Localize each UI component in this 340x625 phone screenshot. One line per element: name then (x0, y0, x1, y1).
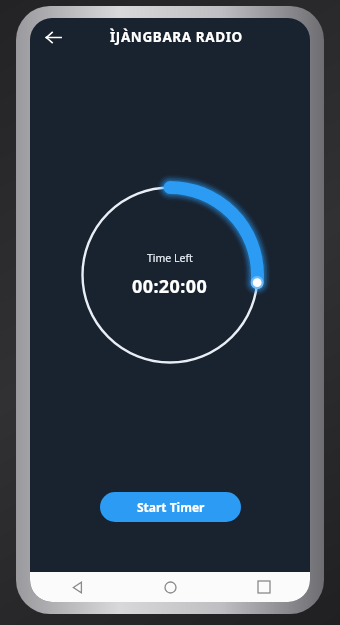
staticText: ÌJÀNGBARA RADIO (110, 28, 243, 46)
button[interactable]: Recents (217, 572, 310, 602)
button[interactable]: Back (30, 572, 124, 602)
button[interactable]: Home (124, 572, 217, 602)
staticText: Time Left (147, 251, 193, 265)
staticText: Start Timer (137, 499, 205, 515)
button[interactable]: Back (36, 20, 70, 54)
staticText: 00:20:00 (132, 274, 208, 299)
button[interactable]: Start Timer (100, 492, 241, 522)
